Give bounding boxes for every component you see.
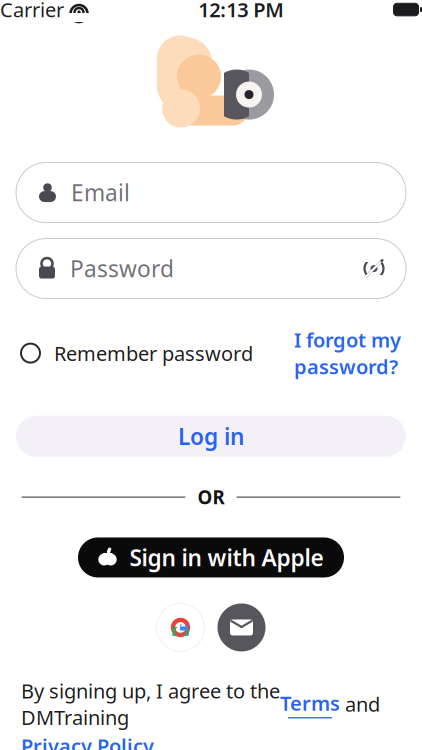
staticText: Log in xyxy=(178,421,244,451)
staticText: Terms xyxy=(280,690,340,716)
button[interactable]: Email xyxy=(16,163,406,223)
staticText: Email xyxy=(71,177,130,208)
button[interactable]: Password xyxy=(16,239,406,299)
button[interactable]: I forgot my password? xyxy=(294,321,401,386)
staticText: By signing up, I agree to the DMTraining xyxy=(21,677,280,731)
staticText: Password xyxy=(70,253,174,284)
staticText: 12:13 PM xyxy=(198,0,284,23)
button[interactable]: Log in xyxy=(16,416,406,457)
button[interactable]: Sign in with Apple xyxy=(78,537,344,577)
button[interactable]: Privacy Policy xyxy=(21,733,154,750)
staticText: Sign in with Apple xyxy=(129,542,323,572)
staticText: Privacy Policy xyxy=(21,733,154,750)
button[interactable]: Sign in with Google xyxy=(156,603,204,651)
button[interactable]: Terms xyxy=(280,690,340,718)
staticText: Remember password xyxy=(54,340,253,366)
staticText: Carrier xyxy=(0,0,64,23)
button[interactable]: Sign in with email xyxy=(217,603,265,651)
staticText: and xyxy=(340,691,380,717)
staticText: OR xyxy=(197,485,224,509)
button[interactable]: Remember password xyxy=(21,334,253,372)
staticText: I forgot my password? xyxy=(294,327,401,380)
